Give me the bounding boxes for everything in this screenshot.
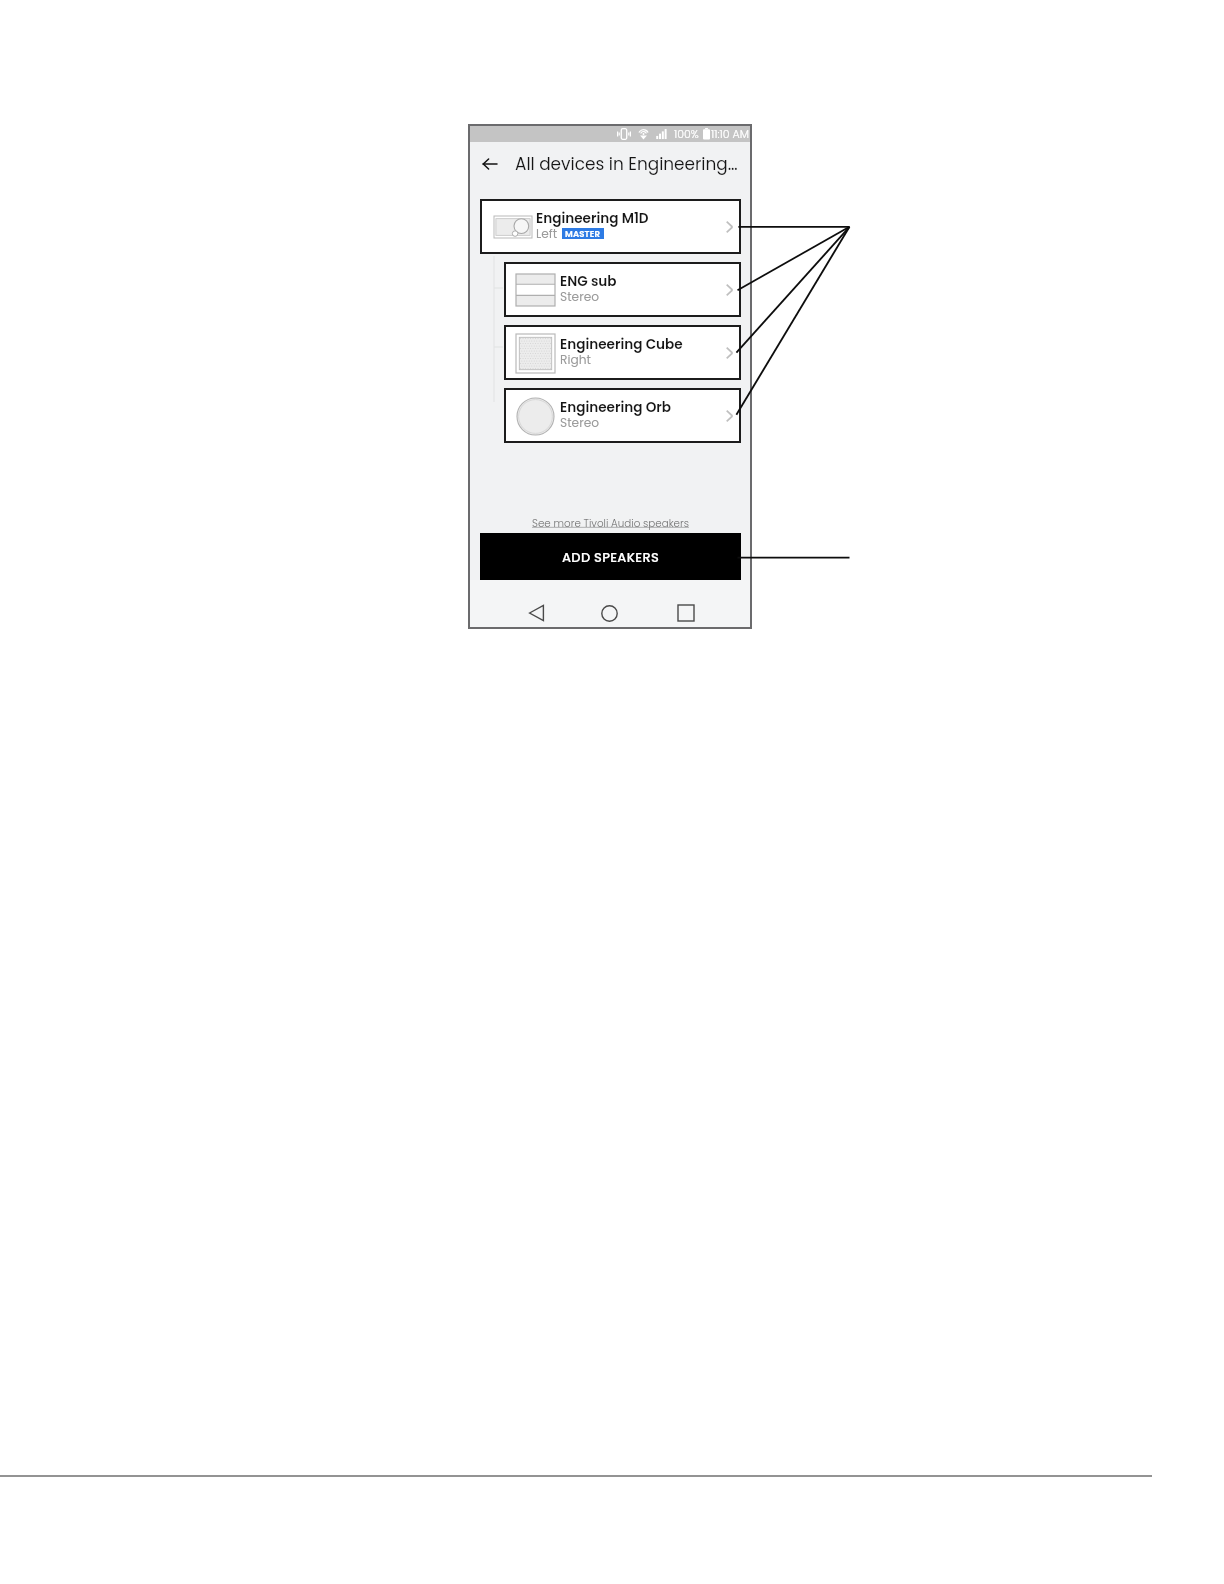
button[interactable]: Back	[520, 597, 552, 629]
staticText: MASTER	[565, 228, 601, 239]
staticText: See more Tivoli Audio speakers	[532, 516, 689, 530]
staticText: Engineering Orb	[560, 398, 672, 417]
button[interactable]: See more Tivoli Audio speakers	[468, 512, 752, 533]
staticText: Left	[536, 225, 558, 242]
staticText: All devices in Engineering…	[515, 152, 738, 176]
staticText: Stereo	[560, 414, 600, 431]
staticText: Right	[560, 351, 591, 368]
button[interactable]: Home	[593, 597, 625, 629]
button[interactable]: Recent apps	[670, 597, 702, 629]
button[interactable]: Engineering Cube	[504, 325, 741, 380]
button[interactable]: ENG sub	[504, 262, 741, 317]
button[interactable]: ADD SPEAKERS	[480, 533, 741, 580]
staticText: 100%	[674, 126, 699, 141]
staticText: ENG sub	[560, 272, 617, 291]
button[interactable]: Engineering Orb	[504, 388, 741, 443]
staticText: ADD SPEAKERS	[562, 548, 660, 566]
button[interactable]: Back	[478, 152, 502, 176]
button[interactable]: Engineering M1D	[480, 199, 741, 254]
staticText: Stereo	[560, 288, 600, 305]
staticText: Engineering M1D	[536, 209, 649, 228]
staticText: 11:10 AM	[711, 126, 749, 141]
staticText: Engineering Cube	[560, 335, 683, 354]
